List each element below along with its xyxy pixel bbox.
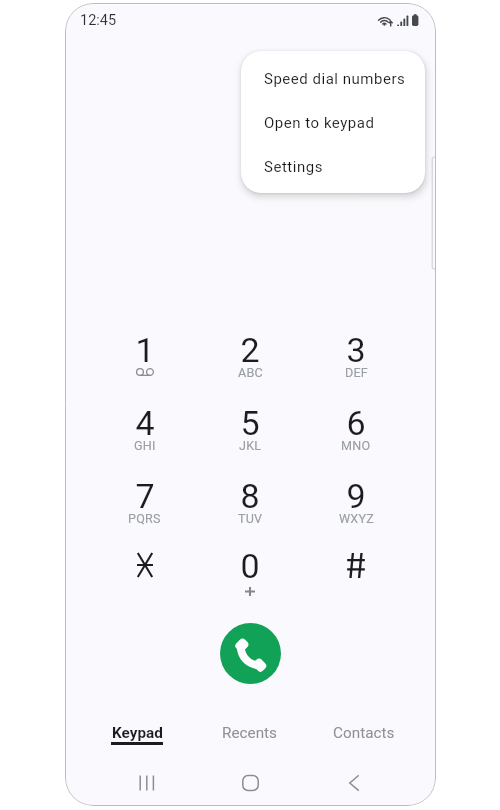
button[interactable]: Call [220,623,281,684]
staticText: Keypad [112,724,163,742]
button[interactable]: Recents [193,718,307,752]
button[interactable] [303,544,409,614]
staticText: 7 [135,476,155,516]
staticText: 1 [135,330,155,370]
staticText: 9 [346,476,366,516]
staticText: 6 [346,403,366,443]
staticText: JKL [239,438,262,452]
staticText: ABC [238,365,263,379]
staticText: Speed dial numbers [264,70,406,88]
staticText: 3 [346,330,366,370]
button[interactable]: Open to keypad [241,101,425,145]
button[interactable]: 1 [92,328,197,398]
staticText: 2 [240,330,260,370]
button[interactable]: 7 [92,474,197,544]
button[interactable]: 0 [197,544,303,614]
staticText: DEF [345,365,368,379]
button[interactable]: 8 [197,474,303,544]
button[interactable]: Settings [241,145,425,189]
button[interactable]: Back [327,760,380,806]
staticText: TUV [238,511,263,525]
staticText: PQRS [128,511,161,525]
button[interactable]: 4 [92,401,197,471]
button[interactable]: 5 [197,401,303,471]
staticText: 8 [240,476,260,516]
staticText: 4 [135,403,155,443]
staticText: Settings [264,158,323,176]
staticText: WXYZ [339,511,374,525]
staticText: 5 [240,403,260,443]
staticText: GHI [134,438,156,452]
button[interactable]: 9 [303,474,409,544]
button[interactable]: Home [224,760,277,806]
button[interactable]: 2 [197,328,303,398]
button[interactable] [92,544,197,614]
button[interactable]: 6 [303,401,409,471]
staticText: 0 [240,546,260,586]
staticText: 12:45 [80,12,117,29]
button[interactable]: Contacts [307,718,421,752]
button[interactable]: Keypad [80,718,193,752]
staticText: MNO [341,438,371,452]
staticText: Open to keypad [264,114,375,132]
button[interactable]: 3 [303,328,409,398]
staticText: Recents [222,724,278,742]
staticText: Contacts [333,724,395,742]
button[interactable]: Speed dial numbers [241,57,425,101]
button[interactable]: Recent apps [120,760,173,806]
